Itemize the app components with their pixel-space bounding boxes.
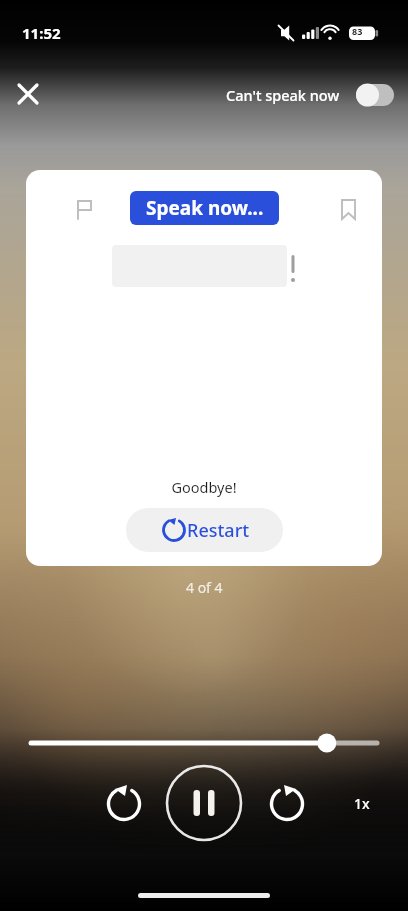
button[interactable]: Close xyxy=(10,76,46,112)
staticText: Can't speak now xyxy=(226,85,340,105)
button[interactable]: 1x xyxy=(340,786,384,820)
staticText: Goodbye! xyxy=(171,477,237,497)
staticText: 83 xyxy=(352,25,363,37)
staticText: 1x xyxy=(354,794,370,813)
staticText: 4 of 4 xyxy=(186,578,223,597)
button[interactable]: Pause xyxy=(165,764,243,842)
staticText: Restart xyxy=(187,518,250,543)
staticText: 11:52 xyxy=(22,23,61,43)
button[interactable]: Can't speak now xyxy=(226,78,396,112)
button[interactable]: Report xyxy=(68,191,100,223)
button[interactable]: Restart xyxy=(126,508,283,552)
button[interactable]: Bookmark xyxy=(332,191,364,223)
button[interactable]: Speak now... xyxy=(130,191,279,225)
button[interactable]: Forward xyxy=(261,777,313,829)
button[interactable]: Rewind xyxy=(98,777,150,829)
staticText: Speak now... xyxy=(146,195,264,221)
button[interactable]: Seek xyxy=(22,727,386,759)
